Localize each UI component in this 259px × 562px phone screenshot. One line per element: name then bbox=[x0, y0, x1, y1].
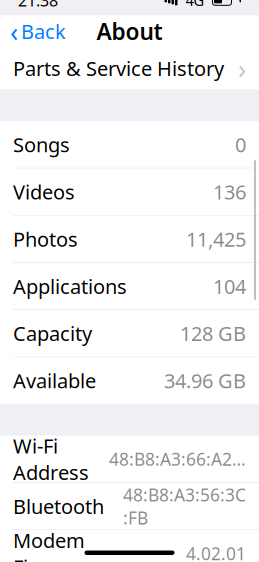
staticText: Wi-Fi Address bbox=[13, 432, 89, 486]
staticText: Videos bbox=[13, 178, 75, 205]
staticText: 4.02.01 bbox=[186, 542, 246, 562]
staticText: 21:38 bbox=[18, 0, 58, 11]
staticText: About bbox=[96, 16, 162, 46]
staticText: 136 bbox=[213, 178, 246, 205]
staticText: 104 bbox=[213, 273, 246, 299]
staticText: Photos bbox=[13, 226, 78, 252]
staticText: 11,425 bbox=[186, 226, 246, 252]
button[interactable]: Parts & Service History bbox=[0, 47, 259, 89]
staticText: 48:B8:A3:56:3C:FB bbox=[123, 483, 246, 529]
staticText: Back bbox=[21, 18, 66, 45]
staticText: › bbox=[238, 51, 246, 86]
button[interactable]: ‹ bbox=[0, 9, 74, 54]
staticText: Capacity bbox=[13, 320, 92, 347]
staticText: ‹ bbox=[10, 14, 18, 49]
staticText: 128 GB bbox=[180, 320, 246, 347]
staticText: 0 bbox=[235, 131, 246, 158]
staticText: Modem Firmware bbox=[13, 527, 101, 562]
staticText: 4G bbox=[185, 0, 204, 10]
staticText: Applications bbox=[13, 273, 127, 299]
staticText: 34.96 GB bbox=[164, 367, 246, 394]
staticText: Available bbox=[13, 367, 96, 394]
staticText: Parts & Service History bbox=[13, 55, 224, 82]
staticText: Bluetooth bbox=[13, 493, 104, 520]
staticText: Songs bbox=[13, 131, 70, 158]
staticText: 48:B8:A3:66:A2… bbox=[109, 447, 246, 470]
